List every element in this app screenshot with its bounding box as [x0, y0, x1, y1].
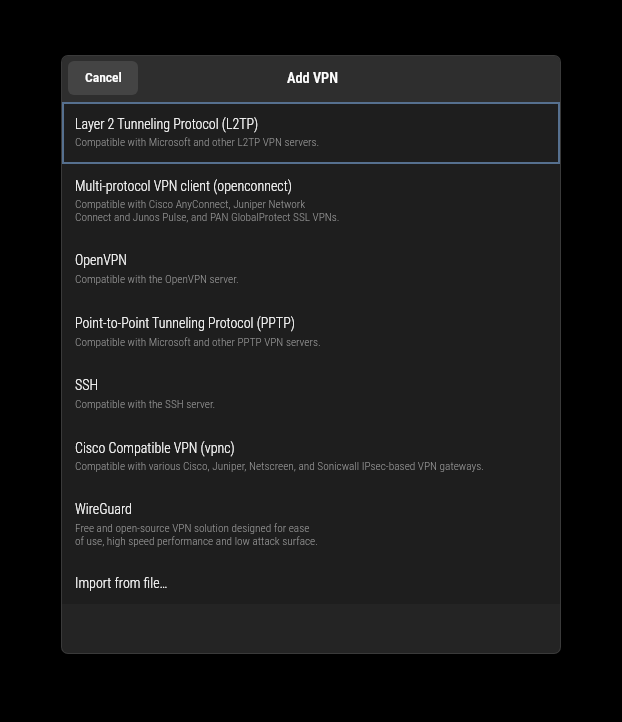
button[interactable]: Point-to-Point Tunneling Protocol (PPTP) [62, 301, 560, 364]
staticText: Add VPN [287, 70, 338, 87]
staticText: Point-to-Point Tunneling Protocol (PPTP) [75, 315, 295, 331]
staticText: OpenVPN [75, 252, 127, 268]
button[interactable]: WireGuard [62, 488, 560, 562]
button[interactable]: Cisco Compatible VPN (vpnc) [62, 426, 560, 488]
staticText: Multi-protocol VPN client (openconnect) [75, 178, 292, 194]
button[interactable]: Layer 2 Tunneling Protocol (L2TP) [62, 102, 560, 164]
staticText: Compatible with Microsoft and other L2TP… [75, 136, 320, 149]
staticText: WireGuard [75, 501, 132, 517]
staticText: Layer 2 Tunneling Protocol (L2TP) [75, 116, 259, 132]
staticText: Cancel [85, 69, 122, 85]
staticText: Compatible with various Cisco, Juniper, … [75, 460, 484, 473]
button[interactable]: Cancel [68, 61, 138, 95]
staticText: Compatible with Microsoft and other PPTP… [75, 336, 321, 349]
staticText: Import from file… [75, 575, 168, 591]
staticText: Free and open-source VPN solution design… [75, 522, 310, 535]
staticText: SSH [75, 377, 99, 393]
staticText: Cisco Compatible VPN (vpnc) [75, 440, 235, 456]
staticText: Compatible with Cisco AnyConnect, Junipe… [75, 198, 306, 211]
staticText: Compatible with the SSH server. [75, 398, 216, 411]
button[interactable]: Import from file… [62, 562, 560, 604]
staticText: Connect and Junos Pulse, and PAN GlobalP… [75, 211, 340, 224]
button[interactable]: Multi-protocol VPN client (openconnect) [62, 164, 560, 239]
staticText: of use, high speed performance and low a… [75, 535, 318, 548]
button[interactable]: OpenVPN [62, 239, 560, 301]
staticText: Compatible with the OpenVPN server. [75, 273, 239, 286]
button[interactable]: SSH [62, 364, 560, 426]
